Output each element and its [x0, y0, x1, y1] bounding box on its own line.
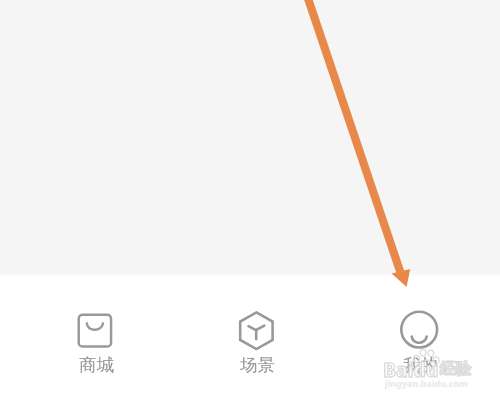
- staticText: 经验: [440, 359, 471, 379]
- button[interactable]: 我的: [379, 296, 461, 390]
- staticText: 场景: [240, 354, 275, 376]
- staticText: Baidu: [383, 356, 439, 383]
- staticText: jingyan.baidu.com: [385, 377, 468, 389]
- button[interactable]: 场景: [216, 296, 298, 390]
- staticText: Baidu: [383, 356, 439, 383]
- staticText: 经验: [440, 359, 471, 379]
- staticText: 我的: [403, 354, 438, 376]
- button[interactable]: 商城: [55, 296, 137, 390]
- staticText: 商城: [79, 354, 114, 376]
